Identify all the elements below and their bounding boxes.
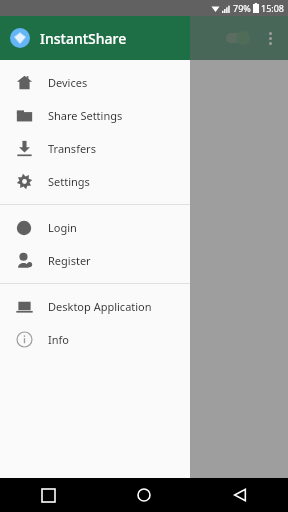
button[interactable]: InstantShare — [0, 16, 190, 60]
staticText: 79% — [233, 2, 251, 14]
button[interactable] — [0, 16, 288, 512]
staticText: Settings — [48, 174, 90, 189]
staticText: Transfers — [48, 141, 96, 156]
staticText: 15:08 — [261, 2, 285, 14]
staticText: Info — [48, 332, 69, 347]
button[interactable]: Desktop Application — [0, 290, 190, 323]
button[interactable]: Info — [0, 323, 190, 356]
button[interactable]: Register — [0, 244, 190, 277]
staticText: Devices — [48, 75, 88, 90]
staticText: Desktop Application — [48, 299, 152, 314]
button[interactable]: Toggle service — [222, 27, 252, 49]
button[interactable]: Devices — [0, 66, 190, 99]
staticText: Register — [48, 253, 91, 268]
staticText: InstantShare — [40, 29, 127, 48]
button[interactable]: Share Settings — [0, 99, 190, 132]
staticText: Share Settings — [48, 108, 123, 123]
button[interactable]: Recents — [0, 478, 96, 512]
button[interactable]: Back — [192, 478, 288, 512]
button[interactable]: Login — [0, 211, 190, 244]
button[interactable]: Settings — [0, 165, 190, 198]
button[interactable]: More options — [258, 26, 282, 50]
staticText: Login — [48, 220, 77, 235]
button[interactable]: Home — [96, 478, 192, 512]
button[interactable]: Transfers — [0, 132, 190, 165]
